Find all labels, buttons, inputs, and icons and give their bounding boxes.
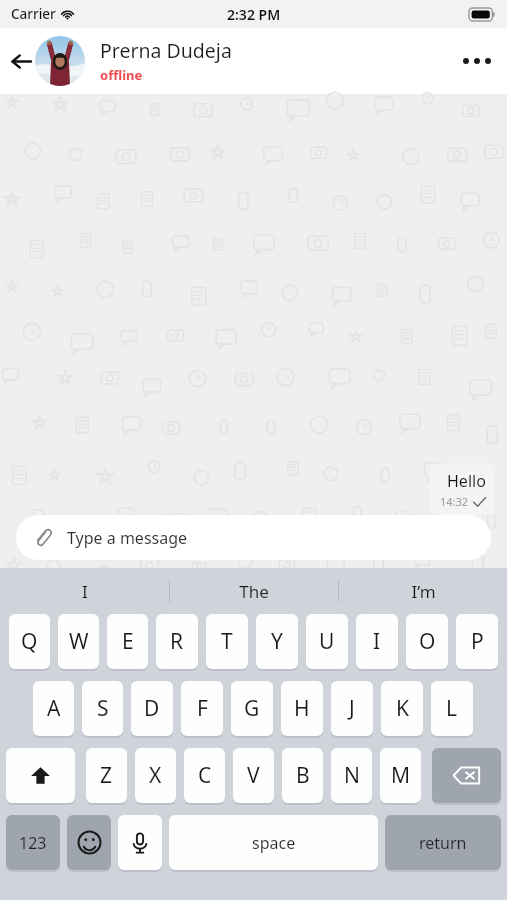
button[interactable]: Back bbox=[0, 40, 42, 82]
button[interactable]: U bbox=[306, 614, 348, 669]
button[interactable]: E bbox=[107, 614, 148, 669]
staticText: N bbox=[344, 761, 360, 790]
button[interactable]: W bbox=[58, 614, 99, 669]
staticText: P bbox=[471, 627, 484, 656]
button[interactable]: G bbox=[231, 681, 273, 736]
button[interactable]: R bbox=[156, 614, 198, 669]
button[interactable]: return bbox=[385, 815, 501, 870]
button[interactable]: C bbox=[184, 748, 225, 803]
button[interactable]: T bbox=[206, 614, 248, 669]
button[interactable]: K bbox=[381, 681, 423, 736]
staticText: Y bbox=[271, 627, 283, 656]
button[interactable]: M bbox=[380, 748, 421, 803]
staticText: E bbox=[122, 627, 134, 656]
staticText: L bbox=[446, 694, 458, 723]
button[interactable]: B bbox=[282, 748, 323, 803]
staticText: H bbox=[294, 694, 310, 723]
button[interactable]: Y bbox=[256, 614, 298, 669]
staticText: G bbox=[244, 694, 260, 723]
button[interactable]: F bbox=[181, 681, 223, 736]
button[interactable]: S bbox=[82, 681, 123, 736]
button[interactable]: J bbox=[331, 681, 373, 736]
button[interactable]: I’m bbox=[339, 568, 507, 614]
staticText: I bbox=[82, 580, 88, 603]
staticText: U bbox=[319, 627, 335, 656]
button[interactable]: Backspace bbox=[432, 748, 501, 803]
button[interactable]: Emoji bbox=[67, 815, 111, 870]
staticText: A bbox=[47, 694, 61, 723]
staticText: O bbox=[419, 627, 436, 656]
staticText: Hello bbox=[447, 470, 486, 492]
button[interactable]: Attach bbox=[30, 525, 56, 551]
staticText: F bbox=[197, 694, 208, 723]
staticText: The bbox=[239, 580, 269, 603]
staticText: R bbox=[170, 627, 184, 656]
staticText: V bbox=[247, 761, 260, 790]
staticText: Q bbox=[21, 627, 38, 656]
button[interactable]: D bbox=[131, 681, 173, 736]
button[interactable]: P bbox=[456, 614, 498, 669]
staticText: offline bbox=[100, 66, 143, 84]
button[interactable]: X bbox=[135, 748, 176, 803]
staticText: W bbox=[69, 627, 89, 656]
button[interactable]: H bbox=[281, 681, 323, 736]
staticText: Z bbox=[100, 761, 113, 790]
staticText: C bbox=[198, 761, 212, 790]
button[interactable]: V bbox=[233, 748, 274, 803]
button[interactable]: I bbox=[356, 614, 398, 669]
staticText: D bbox=[144, 694, 160, 723]
button[interactable]: L bbox=[431, 681, 473, 736]
button[interactable]: 123 bbox=[6, 815, 60, 870]
button[interactable]: Profile photo bbox=[35, 36, 85, 86]
button[interactable]: A bbox=[33, 681, 74, 736]
staticText: M bbox=[391, 761, 411, 790]
button[interactable]: Prerna Dudeja bbox=[100, 37, 232, 84]
button[interactable]: Attach bbox=[16, 515, 491, 560]
button[interactable]: The bbox=[170, 568, 338, 614]
button[interactable]: N bbox=[331, 748, 372, 803]
button[interactable]: More options bbox=[455, 39, 499, 83]
staticText: 2:32 PM bbox=[227, 5, 281, 24]
button[interactable]: O bbox=[406, 614, 448, 669]
staticText: I bbox=[373, 627, 381, 656]
staticText: Prerna Dudeja bbox=[100, 37, 232, 64]
staticText: B bbox=[296, 761, 310, 790]
staticText: T bbox=[221, 627, 233, 656]
staticText: 123 bbox=[19, 832, 47, 854]
staticText: X bbox=[149, 761, 162, 790]
staticText: space bbox=[252, 832, 296, 854]
staticText: Type a message bbox=[67, 527, 188, 549]
button[interactable]: I bbox=[0, 568, 169, 614]
staticText: return bbox=[419, 832, 467, 854]
button[interactable]: Shift bbox=[6, 748, 75, 803]
button[interactable]: Q bbox=[9, 614, 50, 669]
staticText: K bbox=[396, 694, 409, 723]
button[interactable]: Z bbox=[86, 748, 127, 803]
staticText: I’m bbox=[411, 580, 436, 603]
staticText: Carrier bbox=[11, 5, 56, 23]
button[interactable]: space bbox=[169, 815, 378, 870]
button[interactable]: Hello bbox=[429, 463, 495, 515]
staticText: J bbox=[349, 694, 355, 723]
staticText: 14:32 bbox=[440, 494, 469, 509]
staticText: S bbox=[97, 694, 109, 723]
button[interactable]: Dictate bbox=[118, 815, 162, 870]
